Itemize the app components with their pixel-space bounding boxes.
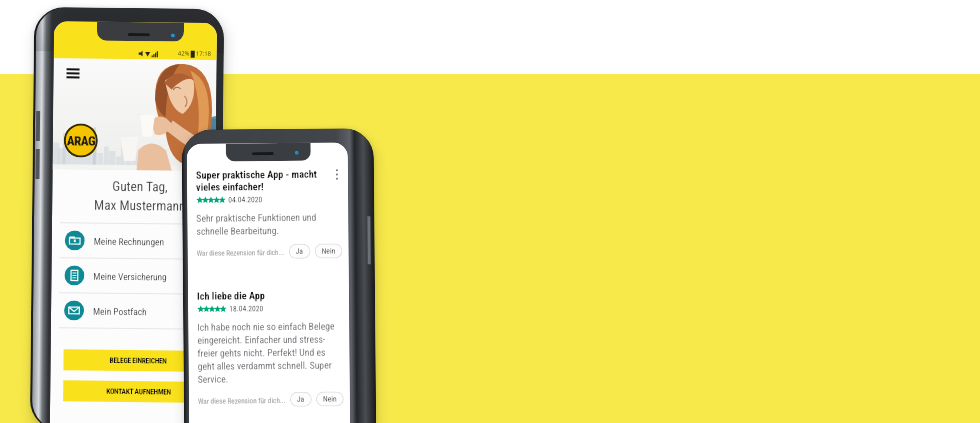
staticText: ARAG <box>67 133 96 149</box>
staticText: Ja <box>297 395 305 404</box>
staticText: Guten Tag, <box>112 179 168 195</box>
button[interactable]: Menu <box>66 63 87 84</box>
staticText: Super praktische App - macht vieles einf… <box>196 169 317 194</box>
staticText: Sehr praktische Funktionen und schnelle … <box>196 212 316 238</box>
staticText: Meine Rechnungen <box>94 236 165 247</box>
staticText: 18.04.2020 <box>229 304 263 313</box>
staticText: War diese Rezension für dich... <box>197 248 285 257</box>
button[interactable]: Ja <box>290 392 312 407</box>
button[interactable]: Meine Rechnungen <box>52 223 215 259</box>
staticText: Max Mustermann <box>94 198 186 215</box>
staticText: Ich habe noch nie so einfach Belege eing… <box>197 320 336 386</box>
button[interactable]: Ja <box>289 244 311 259</box>
staticText: Meine Versicherung <box>93 271 167 282</box>
staticText: KONTAKT AUFNEHMEN <box>106 387 171 396</box>
staticText: Nein <box>322 246 336 256</box>
button[interactable]: KONTAKT AUFNEHMEN <box>63 380 213 403</box>
staticText: BELEGE EINREICHEN <box>109 356 168 365</box>
staticText: 17:18 <box>196 50 212 58</box>
staticText: Nein <box>323 394 337 404</box>
staticText: Mein Postfach <box>93 306 147 317</box>
staticText: Ich liebe die App <box>197 290 265 303</box>
button[interactable]: Nein <box>315 243 343 259</box>
button[interactable]: Meine Versicherung <box>51 258 214 294</box>
button[interactable]: BELEGE EINREICHEN <box>63 349 214 372</box>
staticText: 04.04.2020 <box>228 195 262 204</box>
button[interactable]: Mein Postfach <box>51 293 214 329</box>
staticText: Ja <box>296 247 304 256</box>
button[interactable]: More options <box>331 168 343 180</box>
staticText: 42% <box>178 49 190 58</box>
button[interactable]: Nein <box>316 391 344 407</box>
staticText: War diese Rezension für dich... <box>198 396 286 405</box>
